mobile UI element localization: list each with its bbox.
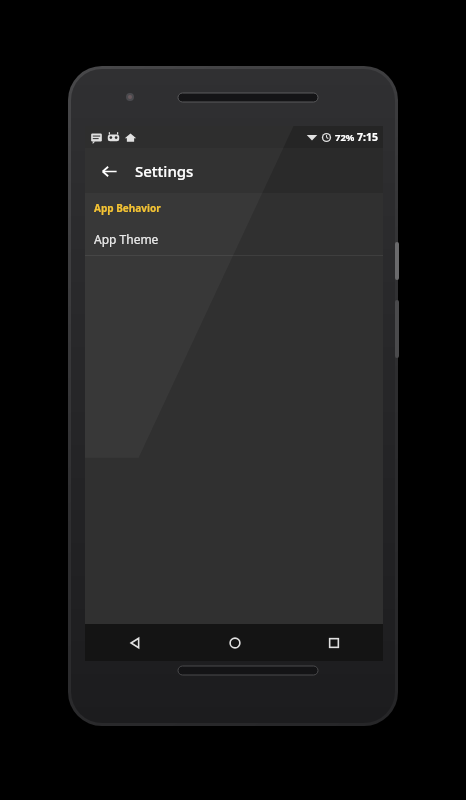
- button[interactable]: Home: [185, 624, 284, 661]
- staticText: App Theme: [94, 231, 159, 247]
- button[interactable]: App Theme: [85, 223, 383, 255]
- staticText: App Behavior: [94, 201, 161, 215]
- staticText: 72%: [335, 131, 355, 144]
- button[interactable]: Navigate up: [92, 154, 126, 188]
- staticText: Settings: [135, 161, 194, 181]
- staticText: 7:15: [357, 130, 378, 144]
- button[interactable]: Back: [85, 624, 185, 661]
- button[interactable]: Recent apps: [284, 624, 383, 661]
